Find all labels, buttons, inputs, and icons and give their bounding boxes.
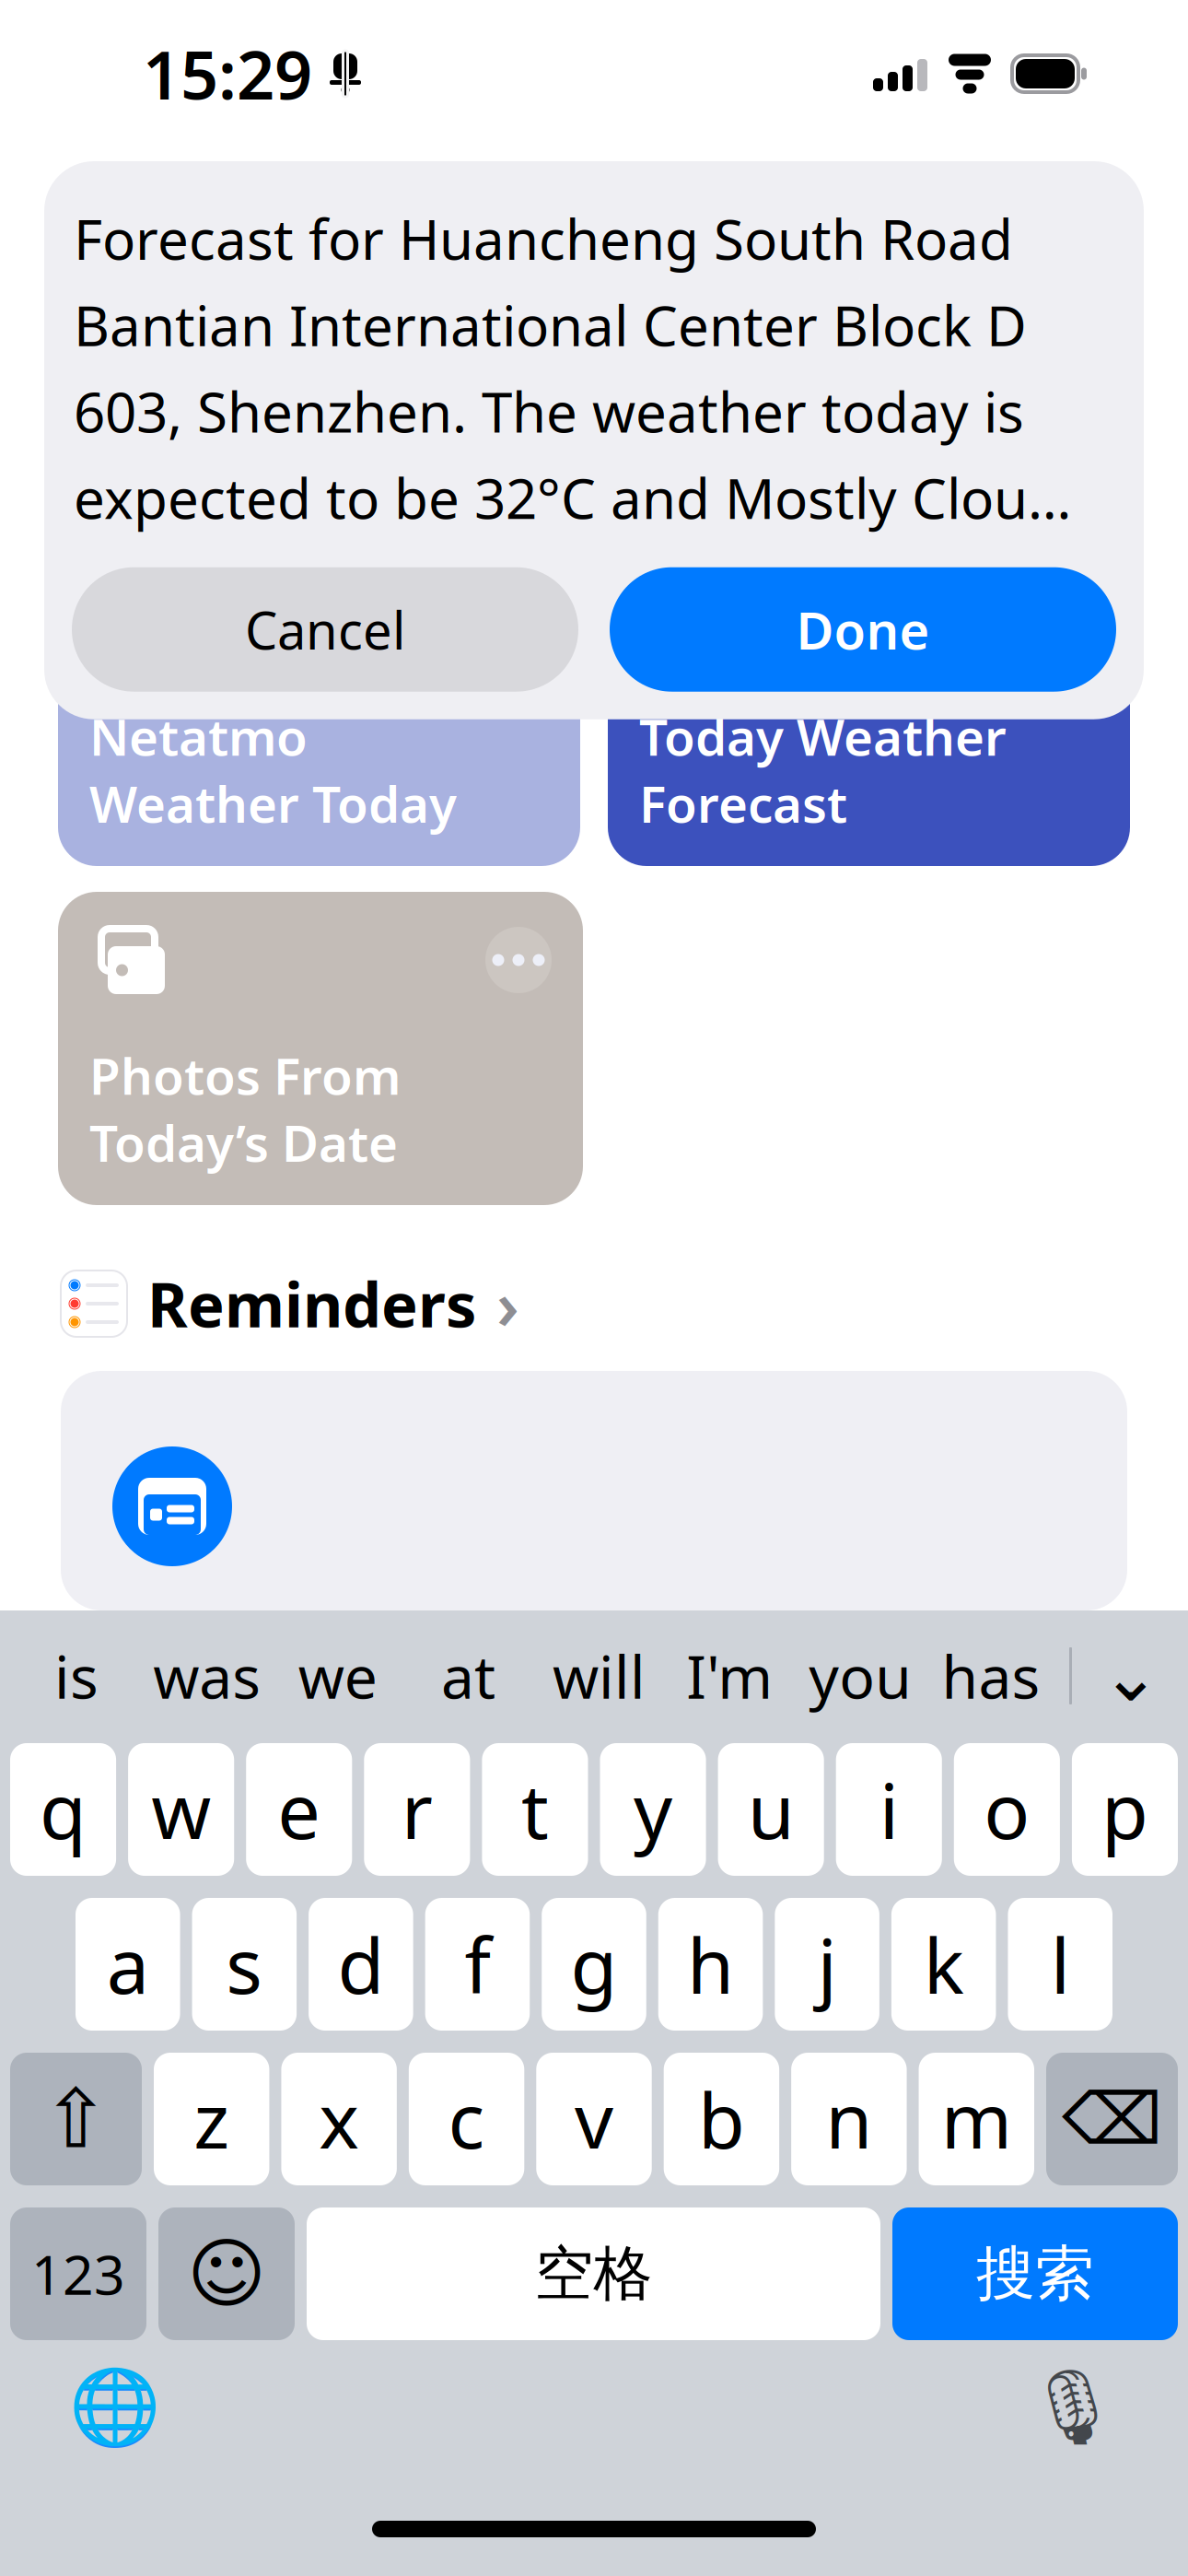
button[interactable]: n (791, 2053, 907, 2185)
button[interactable]: p (1072, 1743, 1178, 1876)
staticText: u (748, 1759, 794, 1860)
staticText: g (571, 1914, 617, 2015)
staticText: 空格 (535, 2238, 652, 2310)
button[interactable]: 空格 (307, 2207, 880, 2340)
button[interactable]: was (142, 1628, 272, 1724)
staticText: o (984, 1759, 1030, 1860)
button[interactable]: y (600, 1743, 706, 1876)
button[interactable]: x (281, 2053, 397, 2185)
button[interactable]: i (836, 1743, 942, 1876)
button[interactable]: Emoji (158, 2207, 295, 2340)
staticText: y (634, 1759, 672, 1860)
button[interactable]: Delete (1046, 2053, 1178, 2185)
button[interactable]: b (664, 2053, 779, 2185)
button[interactable]: r (364, 1743, 470, 1876)
button[interactable]: w (128, 1743, 234, 1876)
staticText: p (1101, 1759, 1148, 1860)
staticText: s (226, 1914, 263, 2015)
staticText: i (879, 1759, 899, 1860)
button[interactable]: Switch keyboard (64, 2357, 166, 2458)
staticText: Photos From (89, 1042, 401, 1109)
button[interactable]: g (542, 1898, 646, 2031)
button[interactable]: d (309, 1898, 413, 2031)
button[interactable]: l (1008, 1898, 1112, 2031)
staticText: n (826, 2068, 872, 2170)
button[interactable]: will (534, 1628, 664, 1724)
staticText: l (1051, 1914, 1070, 2015)
button[interactable]: a (76, 1898, 180, 2031)
staticText: m (941, 2068, 1012, 2170)
staticText: › (496, 1260, 519, 1348)
button[interactable]: Photos From (58, 892, 583, 1205)
staticText: v (575, 2068, 613, 2170)
staticText: you (809, 1637, 912, 1715)
button[interactable]: s (192, 1898, 297, 2031)
button[interactable]: Cancel (72, 567, 578, 692)
button[interactable]: 123 (10, 2207, 146, 2340)
button[interactable]: o (954, 1743, 1060, 1876)
button[interactable]: z (154, 2053, 269, 2185)
staticText: x (319, 2068, 359, 2170)
staticText: t (521, 1759, 549, 1860)
staticText: I'm (686, 1637, 773, 1715)
staticText: 搜索 (976, 2238, 1094, 2310)
button[interactable]: m (919, 2053, 1034, 2185)
button[interactable]: u (718, 1743, 824, 1876)
staticText: w (151, 1759, 211, 1860)
staticText: c (448, 2068, 485, 2170)
button[interactable]: Shift (10, 2053, 142, 2185)
button[interactable] (0, 1371, 1188, 1610)
staticText: will (552, 1637, 645, 1715)
staticText: b (698, 2068, 745, 2170)
button[interactable]: at (403, 1628, 534, 1724)
staticText: 🌐 (69, 2365, 161, 2450)
button[interactable]: Hide keyboard (1085, 1628, 1177, 1724)
button[interactable]: e (246, 1743, 352, 1876)
button[interactable]: I'm (664, 1628, 795, 1724)
staticText: q (40, 1759, 87, 1860)
staticText: 15:29 (143, 30, 312, 118)
staticText: Weather Today (89, 770, 457, 837)
staticText: ⇧ (42, 2073, 110, 2165)
staticText: a (107, 1914, 149, 2015)
button[interactable]: c (409, 2053, 524, 2185)
staticText: Netatmo (89, 703, 308, 770)
staticText: ⌫ (1062, 2079, 1162, 2159)
button[interactable]: q (10, 1743, 116, 1876)
staticText: was (153, 1637, 261, 1715)
button[interactable]: Done (610, 567, 1116, 692)
staticText: Today Weather (639, 703, 1007, 770)
button[interactable]: is (11, 1628, 142, 1724)
button[interactable]: h (658, 1898, 763, 2031)
staticText: Forecast for Huancheng South Road Bantia… (74, 202, 1071, 534)
staticText: z (194, 2068, 229, 2170)
staticText: r (401, 1759, 433, 1860)
staticText: we (298, 1637, 377, 1715)
button[interactable]: Today Weather (608, 553, 1130, 866)
staticText: ⌄ (1101, 1635, 1161, 1716)
staticText: h (687, 1914, 734, 2015)
staticText: e (277, 1759, 321, 1860)
button[interactable]: t (482, 1743, 588, 1876)
staticText: j (817, 1914, 837, 2015)
staticText: Today’s Date (89, 1109, 398, 1176)
button[interactable]: 搜索 (892, 2207, 1178, 2340)
staticText: d (337, 1914, 384, 2015)
button[interactable]: j (775, 1898, 879, 2031)
button[interactable]: k (891, 1898, 996, 2031)
button[interactable]: Dictate (1022, 2357, 1124, 2458)
staticText: 🎙 (1026, 2365, 1120, 2450)
button[interactable]: Netatmo (58, 553, 580, 866)
staticText: ☺ (187, 2231, 266, 2317)
staticText: f (465, 1914, 490, 2015)
button[interactable]: has (926, 1628, 1056, 1724)
staticText: Reminders (147, 1263, 476, 1344)
staticText: 123 (31, 2238, 125, 2310)
staticText: Cancel (245, 595, 405, 664)
staticText: has (942, 1637, 1040, 1715)
button[interactable]: v (536, 2053, 652, 2185)
button[interactable]: you (795, 1628, 926, 1724)
button[interactable]: Reminders (0, 1262, 1188, 1345)
button[interactable]: we (272, 1628, 403, 1724)
button[interactable]: f (425, 1898, 530, 2031)
